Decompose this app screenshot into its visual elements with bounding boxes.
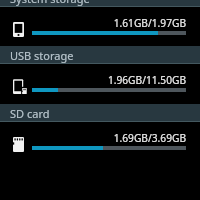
staticText: 1.96GB/11.50GB xyxy=(0,73,186,87)
button[interactable]: SD card xyxy=(0,104,200,122)
other: Internal storage xyxy=(13,22,24,37)
other: SD card xyxy=(13,137,24,152)
button[interactable]: System storage xyxy=(0,0,200,7)
staticText: System storage xyxy=(10,0,90,6)
button[interactable]: Internal storage xyxy=(0,7,200,47)
staticText: SD card xyxy=(10,106,50,121)
staticText: USB storage xyxy=(10,48,74,63)
staticText: 1.61GB/1.97GB xyxy=(0,16,186,30)
button[interactable]: USB storage xyxy=(0,64,200,104)
other: USB storage xyxy=(13,79,24,94)
button[interactable]: SD card xyxy=(0,122,200,162)
staticText: 1.69GB/3.69GB xyxy=(0,131,186,145)
button[interactable]: USB storage xyxy=(0,46,200,64)
